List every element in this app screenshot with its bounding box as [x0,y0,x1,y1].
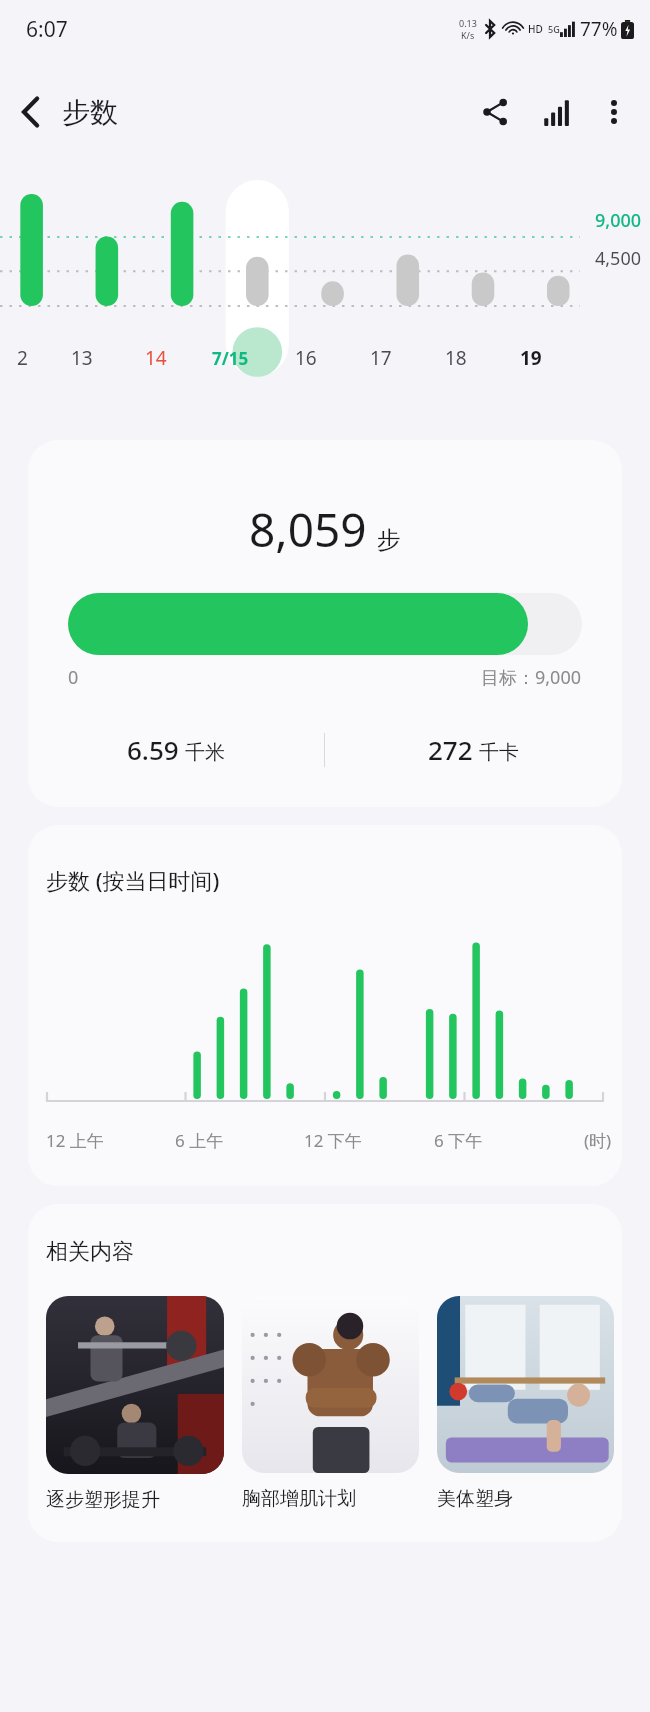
staticText: 逐步塑形提升 [46,1488,160,1512]
staticText: 步数 (按当日时间) [46,865,220,895]
button[interactable]: 美体塑身 [437,1296,614,1511]
staticText: K/s [461,29,475,41]
staticText: 77% [580,16,618,42]
button[interactable]: 14 [119,338,193,378]
staticText: 千卡 [479,740,519,765]
staticText: 千米 [185,740,225,765]
staticText: 16 [295,345,317,371]
button[interactable]: 步数 (按当日时间) [28,825,622,1186]
staticText: 7/15 [212,347,249,370]
staticText: 9,000 [595,208,642,233]
staticText: 6.59 [127,732,179,767]
staticText: 2 [17,345,28,371]
button[interactable]: 6.59 [28,732,324,767]
staticText: 4,500 [595,246,642,271]
button[interactable]: 17 [343,338,418,378]
staticText: 8,059 [249,498,367,561]
staticText: 272 [428,732,473,767]
button[interactable]: 胸部增肌计划 [242,1296,419,1511]
staticText: 17 [370,345,392,371]
staticText: 6 下午 [434,1129,483,1152]
button[interactable]: 逐步塑形提升 [46,1296,224,1512]
button[interactable]: 8,059 [28,440,622,807]
button[interactable]: 272 [325,732,622,767]
button[interactable]: 19 [493,338,568,378]
staticText: 5G [548,23,560,35]
button[interactable]: Back [0,81,62,143]
button[interactable]: 2 [0,338,45,378]
staticText: (时) [584,1129,612,1152]
staticText: 19 [520,345,542,371]
button[interactable]: 18 [418,338,493,378]
staticText: 目标：9,000 [481,665,582,690]
staticText: 12 上午 [46,1129,104,1152]
button[interactable]: More options [586,84,642,140]
button[interactable]: 步数 [62,95,118,130]
staticText: 美体塑身 [437,1487,513,1511]
staticText: 18 [445,345,467,371]
button[interactable]: Share [466,82,526,142]
button[interactable]: 13 [45,338,119,378]
staticText: 6:07 [26,15,68,44]
button[interactable]: 16 [268,338,343,378]
button[interactable]: 7/15 [193,338,268,378]
staticText: 0 [68,665,79,690]
staticText: 0.13 [459,17,477,29]
staticText: 相关内容 [46,1238,134,1266]
staticText: 6 上午 [175,1129,224,1152]
staticText: HD [528,22,543,36]
staticText: 12 下午 [304,1129,362,1152]
staticText: 步 [377,525,401,555]
staticText: 13 [71,345,93,371]
button[interactable]: Chart [526,82,586,142]
staticText: 胸部增肌计划 [242,1487,356,1511]
staticText: 14 [145,345,167,371]
